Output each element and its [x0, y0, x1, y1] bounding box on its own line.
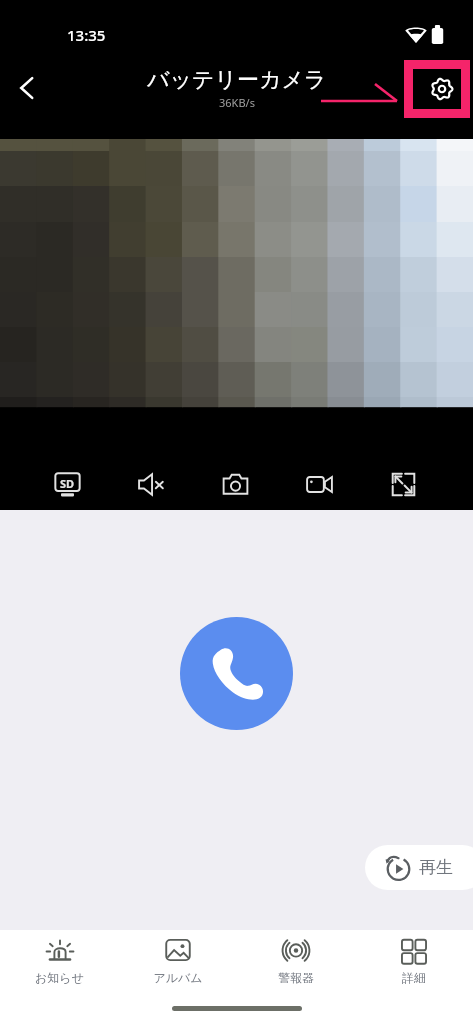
button[interactable]: 再生 — [365, 845, 473, 890]
button[interactable]: アルバム — [119, 930, 237, 992]
staticText: SD — [60, 476, 75, 491]
button[interactable]: Back — [3, 64, 51, 112]
button[interactable]: お知らせ — [0, 930, 119, 992]
staticText: 13:35 — [67, 25, 106, 45]
button[interactable]: Settings — [420, 67, 464, 111]
button[interactable]: SD quality — [39, 456, 95, 512]
button[interactable]: Mute — [123, 456, 179, 512]
button[interactable]: Take photo — [207, 456, 263, 512]
staticText: 警報器 — [278, 970, 314, 985]
button[interactable]: Record video — [291, 456, 347, 512]
staticText: お知らせ — [35, 970, 84, 985]
staticText: 詳細 — [402, 970, 426, 985]
staticText: 36KB/s — [219, 95, 255, 110]
button[interactable]: Full screen — [375, 456, 431, 512]
button[interactable]: Call — [180, 617, 293, 730]
staticText: バッテリーカメラ — [147, 66, 327, 94]
button[interactable]: 警報器 — [237, 930, 355, 992]
button[interactable]: 詳細 — [355, 930, 473, 992]
staticText: 再生 — [419, 857, 453, 878]
staticText: アルバム — [153, 970, 203, 985]
